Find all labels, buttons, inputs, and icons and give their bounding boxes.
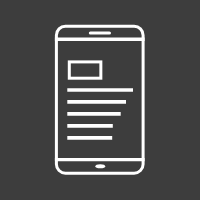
button[interactable]: Mobile article line icon <box>0 0 200 200</box>
